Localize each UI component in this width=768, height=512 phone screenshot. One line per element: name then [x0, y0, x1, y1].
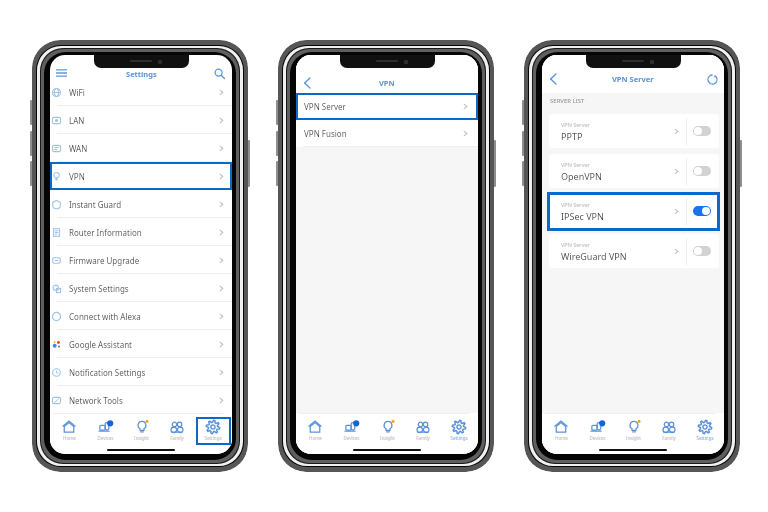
button[interactable]: Family: [159, 417, 195, 445]
staticText: VPN: [69, 171, 85, 182]
staticText: Connect with Alexa: [69, 311, 141, 322]
button[interactable]: Family: [651, 417, 687, 445]
staticText: Router Information: [69, 227, 142, 238]
staticText: Notification Settings: [69, 367, 146, 378]
button[interactable]: VPN: [50, 162, 232, 190]
staticText: VPN: [379, 78, 395, 88]
staticText: Insight: [380, 435, 395, 441]
button[interactable]: Back: [544, 70, 562, 88]
button[interactable]: Router Information: [50, 218, 232, 246]
button[interactable]: Settings: [195, 417, 231, 445]
button[interactable]: Family: [405, 417, 441, 445]
button[interactable]: Toggle VPN: [693, 126, 711, 136]
button[interactable]: Back: [298, 74, 316, 92]
button[interactable]: Devices: [87, 417, 123, 445]
staticText: Devices: [97, 435, 114, 441]
button[interactable]: LAN: [50, 106, 232, 134]
staticText: PPTP: [561, 130, 583, 142]
button[interactable]: VPN Server: [296, 93, 478, 120]
staticText: IPSec VPN: [561, 210, 604, 222]
staticText: Family: [170, 435, 184, 441]
button[interactable]: Insight: [615, 417, 651, 445]
staticText: WireGuard VPN: [561, 250, 627, 262]
button[interactable]: VPN Server: [549, 234, 719, 268]
button[interactable]: Settings: [441, 417, 477, 445]
button[interactable]: Insight: [123, 417, 159, 445]
button[interactable]: Toggle VPN: [693, 246, 711, 256]
staticText: VPN Server: [561, 121, 590, 128]
button[interactable]: Settings: [687, 417, 723, 445]
button[interactable]: Firmware Upgrade: [50, 246, 232, 274]
staticText: Settings: [696, 435, 714, 441]
staticText: VPN Server: [304, 101, 346, 112]
button[interactable]: Toggle VPN: [693, 206, 711, 216]
staticText: VPN Fusion: [304, 128, 347, 139]
button[interactable]: Home: [297, 417, 333, 445]
staticText: Home: [309, 435, 322, 441]
button[interactable]: VPN Fusion: [296, 120, 478, 147]
staticText: Settings: [126, 69, 157, 79]
staticText: Home: [63, 435, 76, 441]
button[interactable]: Toggle VPN: [693, 166, 711, 176]
button[interactable]: System Settings: [50, 274, 232, 302]
button[interactable]: Devices: [333, 417, 369, 445]
staticText: Network Tools: [69, 395, 123, 406]
staticText: Home: [555, 435, 568, 441]
staticText: LAN: [69, 115, 85, 126]
staticText: Devices: [343, 435, 360, 441]
button[interactable]: Home: [543, 417, 579, 445]
button[interactable]: WAN: [50, 134, 232, 162]
staticText: VPN Server: [561, 161, 590, 168]
button[interactable]: Refresh: [703, 70, 721, 88]
staticText: VPN Server: [612, 74, 654, 84]
staticText: Insight: [626, 435, 641, 441]
button[interactable]: Home: [51, 417, 87, 445]
staticText: Family: [662, 435, 676, 441]
staticText: VPN Server: [561, 201, 590, 208]
staticText: OpenVPN: [561, 170, 602, 182]
button[interactable]: WiFi: [50, 78, 232, 106]
button[interactable]: Connect with Alexa: [50, 302, 232, 330]
staticText: WiFi: [69, 87, 85, 98]
button[interactable]: VPN Server: [549, 114, 719, 148]
staticText: Devices: [589, 435, 606, 441]
button[interactable]: Notification Settings: [50, 358, 232, 386]
staticText: WAN: [69, 143, 88, 154]
staticText: Google Assistant: [69, 339, 132, 350]
staticText: Settings: [450, 435, 468, 441]
staticText: VPN Server: [561, 241, 590, 248]
staticText: Firmware Upgrade: [69, 255, 140, 266]
button[interactable]: Google Assistant: [50, 330, 232, 358]
button[interactable]: Insight: [369, 417, 405, 445]
staticText: Instant Guard: [69, 199, 122, 210]
staticText: Family: [416, 435, 430, 441]
button[interactable]: VPN Server: [549, 194, 719, 228]
button[interactable]: Menu: [52, 64, 70, 82]
button[interactable]: VPN Server: [549, 154, 719, 188]
button[interactable]: Network Tools: [50, 386, 232, 414]
button[interactable]: Search: [210, 64, 228, 82]
button[interactable]: Instant Guard: [50, 190, 232, 218]
button[interactable]: Devices: [579, 417, 615, 445]
staticText: SERVER LIST: [550, 97, 585, 105]
staticText: Settings: [204, 435, 222, 441]
staticText: Insight: [134, 435, 149, 441]
staticText: System Settings: [69, 283, 129, 294]
